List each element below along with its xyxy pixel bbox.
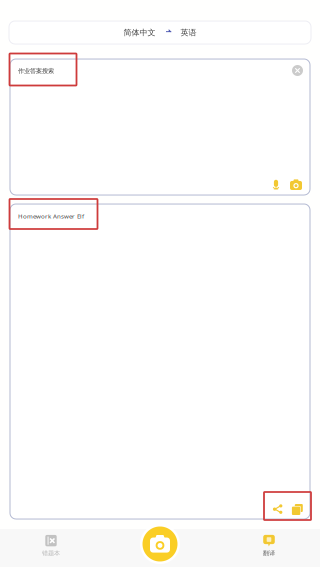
button[interactable]: Voice input bbox=[272, 180, 280, 190]
staticText: 翻译 bbox=[263, 549, 275, 557]
button[interactable]: Camera input bbox=[290, 179, 302, 190]
button[interactable]: Share bbox=[273, 504, 283, 515]
button[interactable]: Copy bbox=[291, 504, 303, 515]
button[interactable]: Scan with camera bbox=[140, 524, 180, 564]
button[interactable]: 错题本 bbox=[0, 531, 102, 565]
button[interactable]: 翻译 bbox=[218, 531, 320, 565]
button[interactable]: Swap languages bbox=[155, 29, 181, 36]
button[interactable]: Clear text bbox=[292, 65, 303, 76]
staticText: 英语 bbox=[181, 27, 197, 38]
staticText: 作业答案搜索 bbox=[18, 67, 54, 75]
staticText: 错题本 bbox=[42, 549, 60, 557]
staticText: Homework Answer Elf bbox=[18, 212, 84, 220]
button[interactable]: 简体中文 bbox=[123, 27, 155, 38]
staticText: 简体中文 bbox=[123, 27, 155, 38]
button[interactable]: 英语 bbox=[181, 27, 197, 38]
